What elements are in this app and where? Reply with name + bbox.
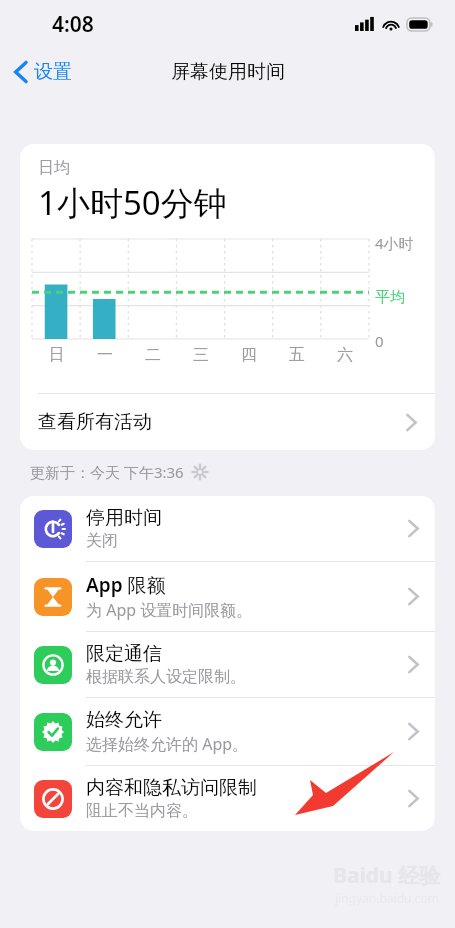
staticText: 1小时50分钟 [38, 180, 227, 225]
staticText: 限定通信 [86, 642, 162, 666]
staticText: 4小时 [375, 233, 414, 253]
staticText: 为 App 设置时间限额。 [86, 599, 253, 621]
staticText: 平均 [375, 288, 405, 307]
staticText: 一 [81, 345, 129, 365]
staticText: 阻止不当内容。 [86, 801, 198, 821]
staticText: 查看所有活动 [38, 410, 406, 434]
staticText: App 限额 [86, 572, 166, 598]
button[interactable]: App 限额 [20, 562, 435, 632]
staticText: 屏幕使用时间 [171, 60, 285, 84]
staticText: 六 [321, 345, 369, 365]
staticText: 始终允许 [86, 708, 162, 732]
staticText: 三 [177, 345, 225, 365]
button[interactable]: 停用时间 [20, 496, 435, 562]
staticText: 0 [375, 331, 384, 351]
button[interactable]: 查看所有活动 [20, 394, 435, 450]
button[interactable]: 设置 [0, 54, 82, 90]
staticText: 五 [273, 345, 321, 365]
staticText: 根据联系人设定限制。 [86, 667, 246, 687]
staticText: Baidu 经验 [333, 861, 441, 890]
staticText: 设置 [34, 60, 72, 84]
staticText: 选择始终允许的 App。 [86, 733, 249, 755]
staticText: 更新于：今天 下午3:36 [30, 462, 184, 482]
button[interactable]: 限定通信 [20, 632, 435, 698]
staticText: 二 [129, 345, 177, 365]
staticText: 四 [225, 345, 273, 365]
button[interactable]: 始终允许 [20, 698, 435, 766]
staticText: 日均 [38, 158, 70, 178]
staticText: 日 [32, 345, 81, 365]
button[interactable]: 内容和隐私访问限制 [20, 766, 435, 831]
staticText: 内容和隐私访问限制 [86, 776, 257, 800]
staticText: 4:08 [52, 10, 94, 39]
staticText: 关闭 [86, 531, 118, 551]
staticText: 停用时间 [86, 506, 162, 530]
